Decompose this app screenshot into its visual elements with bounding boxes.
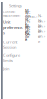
button[interactable]: Work Phone [23,23,47,28]
staticText: Join [3,66,9,71]
staticText: Fax [25,31,30,41]
staticText: Settings [9,3,22,8]
staticText: None [38,23,43,39]
staticText: Current Session [3,39,17,50]
button[interactable]: Main Phone [23,18,47,23]
staticText: CONTACT [25,15,37,18]
staticText: Work Phone [25,10,30,42]
staticText: None [38,28,43,44]
staticText: › [44,23,45,29]
staticText: None [38,18,43,34]
staticText: › [44,28,45,34]
staticText: Mobile [25,23,30,39]
staticText: CURRENT MEASUREMENT [3,10,20,17]
staticText: Main Phone [25,8,30,34]
staticText: › [44,18,45,24]
staticText: None [38,13,43,29]
button[interactable]: Fax [23,33,47,38]
staticText: Unit preferences [3,19,23,35]
staticText: › [44,33,45,39]
staticText: Configure limits [3,52,20,63]
button[interactable]: Mobile [23,28,47,33]
